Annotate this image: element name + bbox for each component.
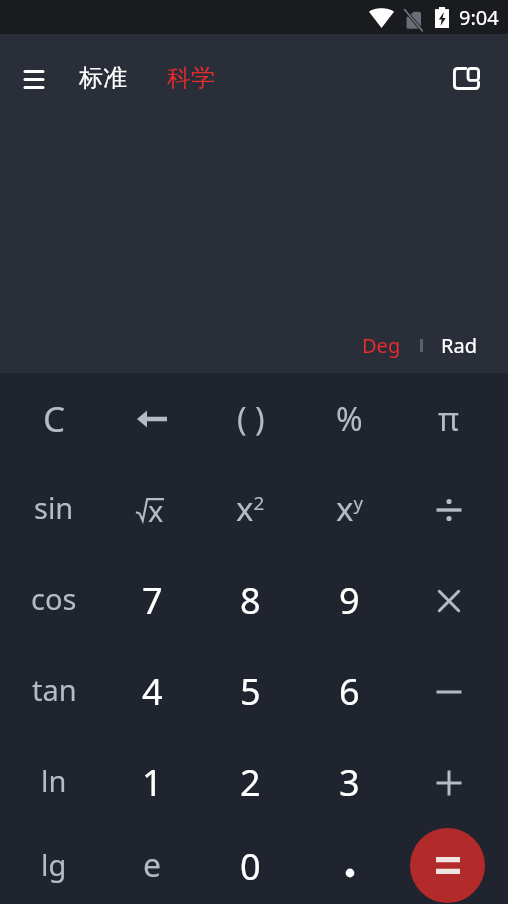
staticText: Deg (362, 332, 401, 359)
button[interactable]: Equals (410, 828, 485, 903)
button[interactable]: % (300, 373, 399, 464)
staticText: 4 (142, 667, 163, 716)
button[interactable]: Multiply (399, 555, 498, 646)
staticText: sin (34, 488, 74, 527)
staticText: x2 (236, 486, 265, 531)
staticText: 9 (339, 576, 360, 625)
button[interactable]: Deg (352, 326, 411, 365)
button[interactable]: Floating window (446, 58, 486, 98)
button[interactable]: Plus (399, 737, 498, 828)
button[interactable]: ( ) (201, 373, 300, 464)
staticText: 6 (339, 667, 360, 716)
button[interactable]: 科学 (153, 53, 229, 103)
button[interactable] (300, 828, 399, 904)
staticText: ( ) (237, 397, 265, 441)
button[interactable]: 4 (103, 646, 201, 737)
button[interactable]: Rad (431, 326, 487, 365)
staticText: ln (41, 761, 67, 800)
button[interactable]: cos (5, 555, 103, 646)
button[interactable]: π (399, 373, 498, 464)
button[interactable]: 6 (300, 646, 399, 737)
staticText: xy (336, 486, 364, 531)
staticText: cos (31, 579, 77, 618)
button[interactable]: sin (5, 464, 103, 555)
button[interactable]: 标准 (65, 53, 141, 103)
staticText: % (336, 397, 363, 441)
button[interactable]: Menu (14, 58, 54, 98)
button[interactable]: 8 (201, 555, 300, 646)
button[interactable]: lg (5, 828, 103, 904)
staticText: 2 (240, 758, 261, 807)
button[interactable]: C (5, 373, 103, 464)
button[interactable]: 3 (300, 737, 399, 828)
staticText: 1 (142, 758, 163, 807)
staticText: 3 (339, 758, 360, 807)
staticText: 9:04 (459, 4, 499, 31)
button[interactable]: 5 (201, 646, 300, 737)
staticText: tan (32, 670, 77, 709)
button[interactable]: x (103, 464, 201, 555)
staticText: x (148, 491, 164, 525)
staticText: 7 (142, 576, 163, 625)
staticText: π (438, 397, 459, 441)
button[interactable]: Divide (399, 464, 498, 555)
button[interactable]: Backspace (103, 373, 201, 464)
staticText: 5 (240, 667, 261, 716)
button[interactable]: 0 (201, 828, 300, 904)
staticText: 科学 (167, 63, 215, 93)
button[interactable]: tan (5, 646, 103, 737)
button[interactable]: xy (300, 464, 399, 555)
button[interactable]: 9 (300, 555, 399, 646)
button[interactable]: 1 (103, 737, 201, 828)
staticText: C (43, 395, 66, 443)
staticText: 0 (240, 842, 261, 891)
button[interactable]: x2 (201, 464, 300, 555)
staticText: e (143, 843, 162, 887)
button[interactable]: Minus (399, 646, 498, 737)
button[interactable]: 7 (103, 555, 201, 646)
button[interactable]: ln (5, 737, 103, 828)
staticText: 标准 (79, 63, 127, 93)
button[interactable]: e (103, 828, 201, 904)
button[interactable]: 2 (201, 737, 300, 828)
staticText: lg (41, 845, 67, 884)
staticText: Rad (441, 332, 477, 359)
staticText: 8 (240, 576, 261, 625)
